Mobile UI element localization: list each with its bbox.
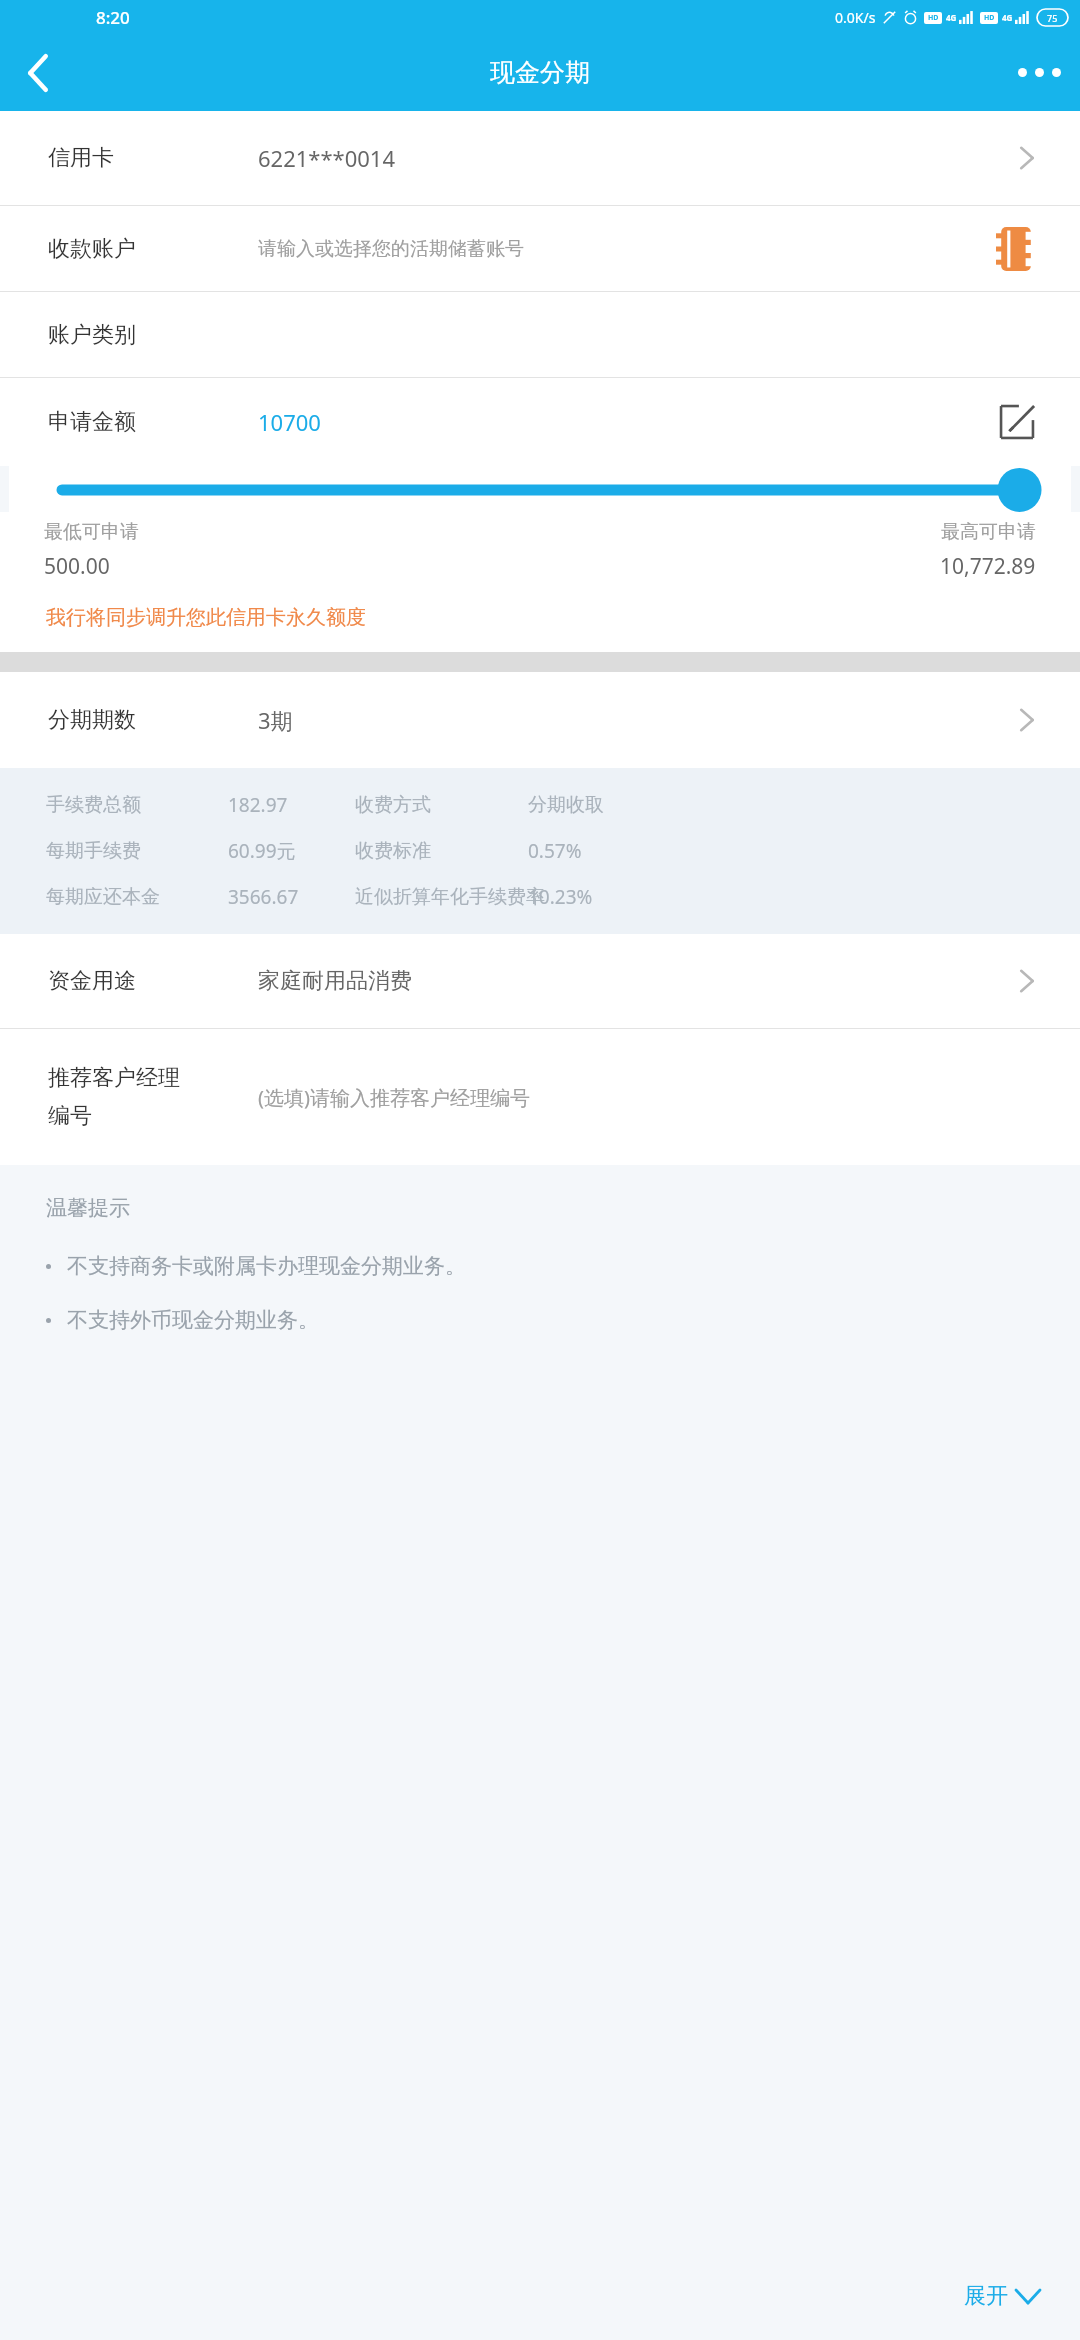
- staticText: 0.0K/s: [835, 8, 876, 27]
- staticText: 不支持外币现金分期业务。: [67, 1307, 319, 1333]
- staticText: 分期收取: [528, 793, 604, 817]
- staticText: 分期期数: [48, 706, 136, 734]
- button[interactable]: 账户类别: [0, 292, 1080, 377]
- staticText: 最低可申请: [44, 520, 139, 544]
- button[interactable]: 信用卡: [0, 111, 1080, 205]
- staticText: 500.00: [44, 552, 110, 581]
- staticText: 每期手续费: [46, 839, 141, 863]
- staticText: 75: [1047, 12, 1058, 24]
- staticText: 收费方式: [355, 793, 431, 817]
- staticText: 展开: [964, 2282, 1008, 2310]
- button[interactable]: Back: [0, 34, 76, 111]
- staticText: 182.97: [228, 792, 288, 818]
- staticText: HD: [984, 13, 995, 23]
- button[interactable]: 推荐客户经理: [0, 1029, 1080, 1165]
- staticText: 3期: [258, 705, 293, 735]
- staticText: 10.23%: [528, 884, 593, 910]
- staticText: 每期应还本金: [46, 885, 160, 909]
- staticText: 4G: [1002, 12, 1013, 23]
- staticText: 0.57%: [528, 838, 582, 864]
- staticText: 编号: [48, 1102, 92, 1130]
- button[interactable]: 资金用途: [0, 934, 1080, 1028]
- staticText: 手续费总额: [46, 793, 141, 817]
- staticText: 6221***0014: [258, 143, 396, 173]
- staticText: 申请金额: [48, 408, 136, 436]
- staticText: 资金用途: [48, 967, 136, 995]
- staticText: 家庭耐用品消费: [258, 967, 412, 995]
- button[interactable]: More options: [998, 34, 1080, 111]
- staticText: 收款账户: [48, 235, 136, 263]
- button[interactable]: 申请金额: [0, 378, 1080, 466]
- button[interactable]: 收款账户: [0, 206, 1080, 291]
- staticText: 推荐客户经理: [48, 1064, 180, 1092]
- staticText: 现金分期: [490, 57, 590, 88]
- staticText: (选填)请输入推荐客户经理编号: [258, 1084, 530, 1111]
- staticText: 账户类别: [48, 321, 136, 349]
- staticText: 收费标准: [355, 839, 431, 863]
- staticText: 3566.67: [228, 884, 299, 910]
- staticText: 4G: [946, 12, 957, 23]
- staticText: 我行将同步调升您此信用卡永久额度: [46, 605, 366, 630]
- staticText: 温馨提示: [46, 1195, 130, 1221]
- staticText: 10,772.89: [940, 552, 1036, 581]
- button[interactable]: 分期期数: [0, 672, 1080, 768]
- staticText: HD: [928, 13, 939, 23]
- staticText: 信用卡: [48, 144, 114, 172]
- button[interactable]: 展开: [964, 2282, 1040, 2340]
- staticText: 不支持商务卡或附属卡办理现金分期业务。: [67, 1253, 466, 1279]
- staticText: 8:20: [96, 6, 130, 29]
- staticText: 近似折算年化手续费率: [355, 885, 545, 909]
- staticText: 60.99元: [228, 838, 296, 864]
- button[interactable]: Edit amount: [998, 403, 1036, 441]
- staticText: 请输入或选择您的活期储蓄账号: [258, 237, 524, 261]
- staticText: 最高可申请: [941, 520, 1036, 544]
- staticText: 10700: [258, 407, 321, 437]
